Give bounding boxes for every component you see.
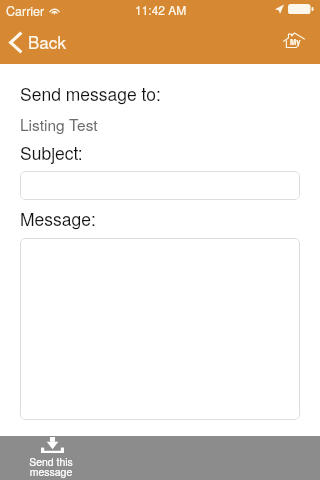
staticText: Back bbox=[28, 29, 66, 53]
staticText: Message: bbox=[20, 206, 96, 231]
button[interactable]: Send this message bbox=[24, 436, 78, 480]
button[interactable] bbox=[20, 238, 300, 420]
staticText: Carrier bbox=[6, 2, 45, 20]
button[interactable]: My Home bbox=[277, 25, 309, 55]
staticText: Subject: bbox=[20, 140, 83, 165]
staticText: Listing Test bbox=[20, 113, 98, 135]
staticText: Send this message bbox=[24, 454, 78, 479]
staticText: 11:42 AM bbox=[135, 1, 187, 18]
staticText: My bbox=[290, 37, 301, 48]
button[interactable] bbox=[20, 171, 300, 200]
staticText: Send message to: bbox=[20, 81, 161, 106]
button[interactable]: Back bbox=[0, 22, 74, 62]
